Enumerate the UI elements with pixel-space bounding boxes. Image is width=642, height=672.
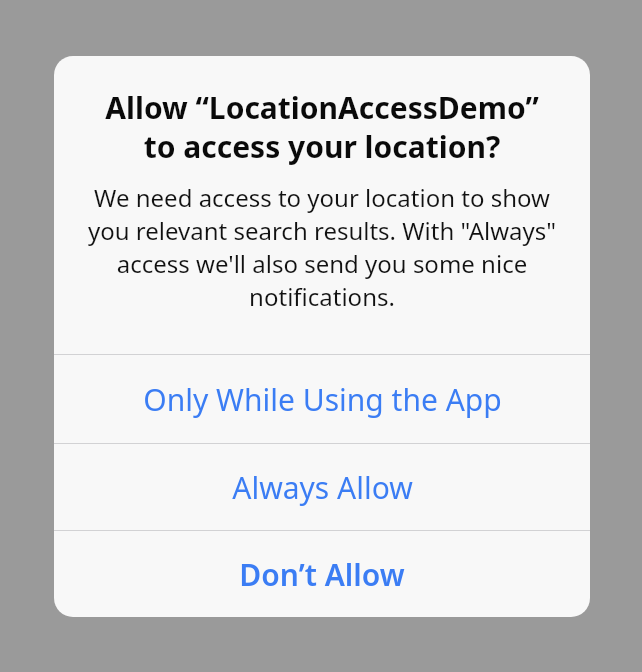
staticText: We need access to your location to show … (76, 181, 568, 313)
staticText: Allow “LocationAccessDemo” to access you… (64, 87, 580, 166)
button[interactable]: Don’t Allow (54, 531, 590, 617)
staticText: Always Allow (232, 467, 413, 508)
button[interactable]: Always Allow (54, 444, 590, 530)
button[interactable]: Only While Using the App (54, 355, 590, 443)
staticText: Don’t Allow (239, 554, 405, 595)
staticText: Only While Using the App (143, 379, 502, 420)
